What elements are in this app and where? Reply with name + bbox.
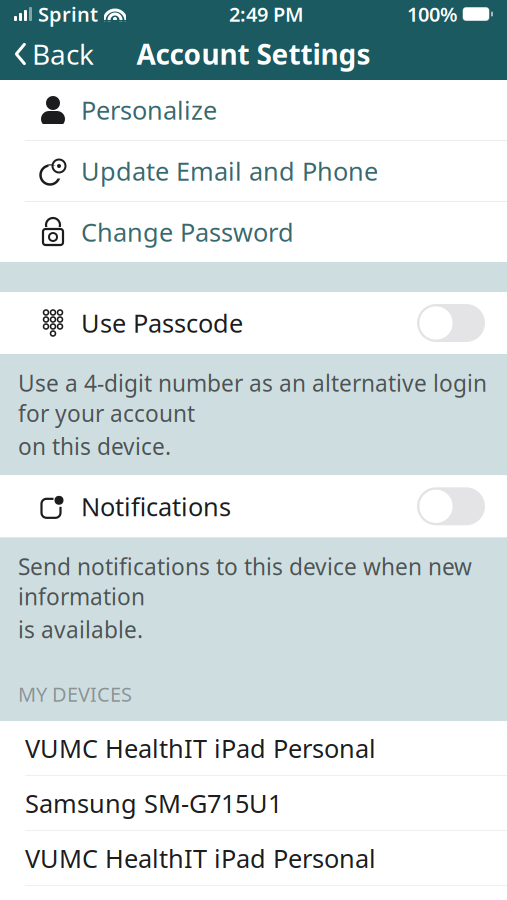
button[interactable]: Use Passcode bbox=[0, 292, 507, 354]
staticText: Send notifications to this device when n… bbox=[18, 551, 472, 611]
staticText: Change Password bbox=[81, 215, 294, 249]
staticText: Notifications bbox=[81, 489, 231, 523]
staticText: VUMC HealthIT iPad Personal bbox=[25, 731, 376, 765]
staticText: Personalize bbox=[81, 93, 217, 127]
staticText: MY DEVICES bbox=[18, 681, 132, 707]
staticText: Back bbox=[32, 35, 94, 73]
button[interactable]: Back bbox=[0, 28, 108, 80]
staticText: 100% bbox=[407, 1, 458, 27]
button[interactable]: VUMC HealthIT iPad Personal bbox=[0, 831, 507, 885]
button[interactable]: Samsung SM-G715U1 bbox=[0, 776, 507, 830]
staticText: Account Settings bbox=[136, 35, 370, 73]
staticText: is available. bbox=[18, 614, 143, 645]
staticText: Samsung SM-G715U1 bbox=[25, 786, 282, 820]
staticText: Use Passcode bbox=[81, 306, 243, 340]
staticText: VUMC HealthIT iPad Personal bbox=[25, 841, 376, 875]
staticText: Sprint bbox=[38, 1, 98, 27]
button[interactable]: Personalize bbox=[0, 80, 507, 140]
button[interactable]: Change Password bbox=[0, 202, 507, 262]
button[interactable]: Update Email and Phone bbox=[0, 141, 507, 201]
button[interactable]: VUMC HealthIT iPad Personal bbox=[0, 721, 507, 775]
button[interactable]: Notifications bbox=[0, 475, 507, 537]
staticText: 2:49 PM bbox=[229, 1, 304, 27]
staticText: Update Email and Phone bbox=[81, 154, 378, 188]
staticText: on this device. bbox=[18, 431, 171, 461]
staticText: Use a 4-digit number as an alternative l… bbox=[18, 368, 487, 428]
